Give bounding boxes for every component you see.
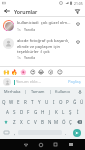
button[interactable]: React 😂 [37,67,46,76]
staticText: abcde fotoğraf çok başarılı, elinde ve p… [17,38,72,54]
staticText: İ [77,109,79,115]
button[interactable]: Q [0,97,8,107]
button[interactable]: React 🌸 [19,67,28,76]
button[interactable]: Merhaba [0,87,25,96]
button[interactable]: kullaniciadi çok güzel olmuş 🙌🔥 [0,17,85,35]
button[interactable]: F [25,107,32,117]
button[interactable]: Filter [73,7,82,16]
button[interactable]: Kullanıcı [51,87,75,96]
button[interactable]: Like [74,38,82,46]
staticText: Tamam [31,89,45,94]
staticText: Ö [62,119,66,125]
button[interactable]: N [46,117,53,127]
button[interactable]: Tamam [26,87,50,96]
button[interactable]: Home [33,139,48,150]
staticText: X [20,119,23,125]
button[interactable]: C [25,117,32,127]
staticText: Q [2,99,6,105]
staticText: K [55,109,58,115]
staticText: Ş [69,109,72,115]
button[interactable]: Y [36,97,43,107]
staticText: R [24,99,27,105]
button[interactable]: Ö [60,117,67,127]
button[interactable]: R [22,97,29,107]
button[interactable]: React 😊 [55,67,64,76]
button[interactable]: React 🙌 [2,67,10,76]
button[interactable]: Shift [0,117,11,127]
button[interactable]: Recents [48,139,63,150]
button[interactable]: Voice input [75,87,85,96]
staticText: 1s [17,27,21,32]
button[interactable]: K [53,107,60,117]
staticText: U [45,99,49,105]
staticText: 😂 [38,69,45,75]
staticText: L [62,109,65,115]
button[interactable]: Back [3,7,11,15]
button[interactable]: Hide keyboard [63,139,78,150]
button[interactable]: L [60,107,67,117]
staticText: N [48,119,52,125]
button[interactable]: G [32,107,39,117]
button[interactable]: React 😮 [46,67,55,76]
button[interactable]: . [62,127,69,138]
button[interactable]: abcde fotoğraf çok başarılı, elinde ve p… [0,35,85,63]
staticText: 😮 [48,69,54,75]
staticText: H [41,109,45,115]
button[interactable]: X [18,117,25,127]
button[interactable]: H [39,107,46,117]
button[interactable]: Numbers and symbols [1,127,11,138]
button[interactable]: , [11,127,18,138]
staticText: Ç [69,119,72,125]
staticText: Ü [80,99,84,105]
button[interactable]: W [8,97,15,107]
button[interactable]: T [29,97,36,107]
staticText: T [31,99,34,105]
staticText: D [20,109,24,115]
button[interactable]: Ğ [71,97,78,107]
staticText: J [49,109,51,115]
staticText: 🙌 [3,69,10,75]
staticText: 1s [17,55,21,60]
button[interactable]: Ş [67,107,74,117]
button[interactable]: İ [74,107,81,117]
button[interactable]: Z [11,117,18,127]
button[interactable]: Backspace [74,117,85,127]
staticText: A [6,109,9,115]
staticText: E [17,99,20,105]
button[interactable]: M [53,117,60,127]
staticText: F [27,109,30,115]
staticText: V [34,119,37,125]
button[interactable]: B [39,117,46,127]
button[interactable]: React 🔥 [10,67,19,76]
staticText: G [34,109,38,115]
button[interactable]: D [18,107,25,117]
button[interactable]: E [15,97,22,107]
button[interactable]: A [4,107,11,117]
button[interactable]: Back [18,139,33,150]
button[interactable]: S [11,107,18,117]
button[interactable]: V [32,117,39,127]
staticText: Paylaş [68,79,81,85]
button[interactable]: React 😍 [28,67,37,76]
button[interactable]: O [57,97,64,107]
button[interactable]: P [64,97,71,107]
button[interactable]: Yorum ekle... [16,79,67,85]
button[interactable]: Ü [78,97,85,107]
staticText: M [54,119,59,125]
button[interactable]: J [46,107,53,117]
button[interactable]: Send [69,127,84,138]
staticText: C [27,119,30,125]
button[interactable]: Paylaş [67,79,82,85]
button[interactable]: I [50,97,57,107]
button[interactable]: Yanıtla [24,55,36,60]
staticText: S [13,109,16,115]
button[interactable]: Like [74,20,82,28]
staticText: 🔥 [11,69,18,75]
staticText: O [59,99,63,105]
staticText: 21:05 [74,1,83,6]
button[interactable]: Yanıtla [24,27,36,32]
staticText: I [53,99,55,105]
button[interactable]: U [43,97,50,107]
button[interactable]: Ç [67,117,74,127]
